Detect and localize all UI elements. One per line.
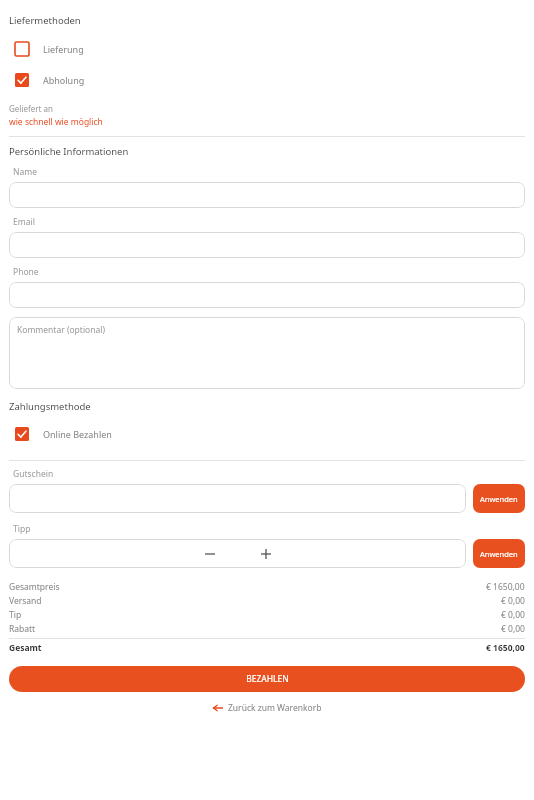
button[interactable]: Lieferung bbox=[0, 37, 534, 61]
staticText: Online Bezahlen bbox=[43, 428, 112, 440]
staticText: Versand bbox=[9, 595, 501, 607]
button[interactable] bbox=[9, 232, 525, 258]
button[interactable]: Anwenden bbox=[473, 484, 525, 513]
button[interactable]: BEZAHLEN bbox=[9, 666, 525, 692]
staticText: Abholung bbox=[43, 74, 85, 86]
button[interactable]: Increase tip bbox=[256, 544, 276, 564]
staticText: € 1650,00 bbox=[486, 642, 525, 654]
button[interactable] bbox=[9, 282, 525, 308]
staticText: Email bbox=[13, 216, 35, 228]
staticText: BEZAHLEN bbox=[246, 673, 289, 685]
staticText: Tip bbox=[9, 609, 501, 621]
staticText: Gesamtpreis bbox=[9, 581, 486, 593]
button[interactable]: Abholung bbox=[0, 68, 534, 92]
staticText: € 0,00 bbox=[501, 609, 525, 621]
staticText: Persönliche Informationen bbox=[9, 145, 129, 158]
staticText: Name bbox=[13, 166, 37, 178]
staticText: Anwenden bbox=[480, 549, 518, 559]
staticText: Phone bbox=[13, 266, 39, 278]
button[interactable]: Anwenden bbox=[473, 539, 525, 568]
button[interactable]: Online Bezahlen bbox=[0, 422, 534, 446]
staticText: Rabatt bbox=[9, 623, 501, 635]
staticText: wie schnell wie möglich bbox=[9, 116, 103, 128]
button[interactable]: Decrease tip bbox=[200, 544, 220, 564]
button[interactable]: Zurück zum Warenkorb bbox=[209, 700, 326, 716]
staticText: € 1650,00 bbox=[486, 581, 525, 593]
staticText: € 0,00 bbox=[501, 623, 525, 635]
staticText: € 0,00 bbox=[501, 595, 525, 607]
staticText: Geliefert an bbox=[9, 103, 53, 114]
button[interactable] bbox=[9, 182, 525, 208]
staticText: Zahlungsmethode bbox=[9, 400, 91, 413]
staticText: Anwenden bbox=[480, 494, 518, 504]
staticText: Lieferung bbox=[43, 43, 84, 55]
staticText: Gutschein bbox=[13, 468, 54, 480]
button[interactable] bbox=[9, 539, 466, 568]
button[interactable]: Kommentar (optional) bbox=[9, 317, 525, 389]
staticText: Liefermethoden bbox=[9, 14, 81, 27]
staticText: Kommentar (optional) bbox=[17, 324, 105, 336]
button[interactable] bbox=[9, 484, 466, 513]
staticText: Zurück zum Warenkorb bbox=[228, 702, 322, 714]
staticText: Tipp bbox=[13, 523, 31, 535]
staticText: Gesamt bbox=[9, 642, 486, 654]
